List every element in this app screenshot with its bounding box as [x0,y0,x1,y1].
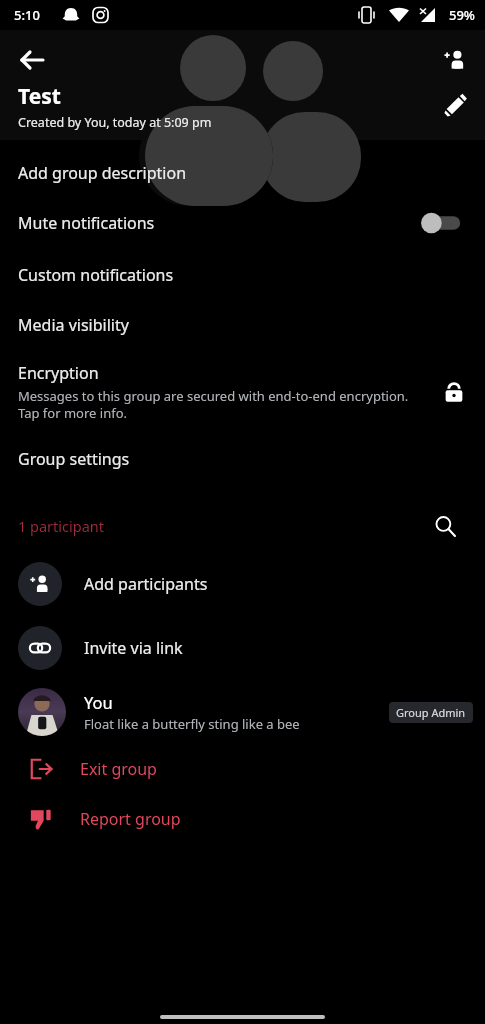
button[interactable]: Back [8,36,56,84]
staticText: Exit group [80,758,157,780]
staticText: Messages to this group are secured with … [18,387,429,422]
staticText: Report group [80,808,181,830]
staticText: Test [18,82,61,111]
button[interactable]: Mute notifications [0,196,485,250]
button[interactable]: Edit group name [431,82,479,130]
staticText: 59% [449,6,475,24]
staticText: Custom notifications [18,264,174,286]
staticText: Mute notifications [18,212,417,234]
button[interactable]: Add participant [431,36,479,84]
button[interactable]: Test [18,82,212,131]
staticText: Float like a butterfly sting like a bee [84,715,300,733]
staticText: You [84,691,113,713]
staticText: Group Admin [396,705,466,720]
staticText: Group settings [18,448,130,470]
button[interactable]: Encryption [0,350,485,434]
staticText: Created by You, today at 5:09 pm [18,114,212,131]
button[interactable]: Group settings [0,434,485,484]
button[interactable]: Custom notifications [0,250,485,300]
staticText: Add participants [84,573,208,595]
staticText: Encryption [18,362,99,384]
button[interactable]: Add participants [0,552,485,616]
staticText: 1 participant [18,516,425,536]
staticText: Add group description [18,162,187,184]
button[interactable]: Add group description [0,150,485,196]
button[interactable]: You [0,680,485,744]
staticText: 5:10 [14,6,40,24]
button[interactable]: Exit group [0,744,485,794]
button[interactable]: Media visibility [0,300,485,350]
button[interactable]: Report group [0,794,485,844]
staticText: Media visibility [18,314,129,336]
staticText: Invite via link [84,637,183,659]
button[interactable]: Invite via link [0,616,485,680]
button[interactable]: Search participants [425,506,465,546]
